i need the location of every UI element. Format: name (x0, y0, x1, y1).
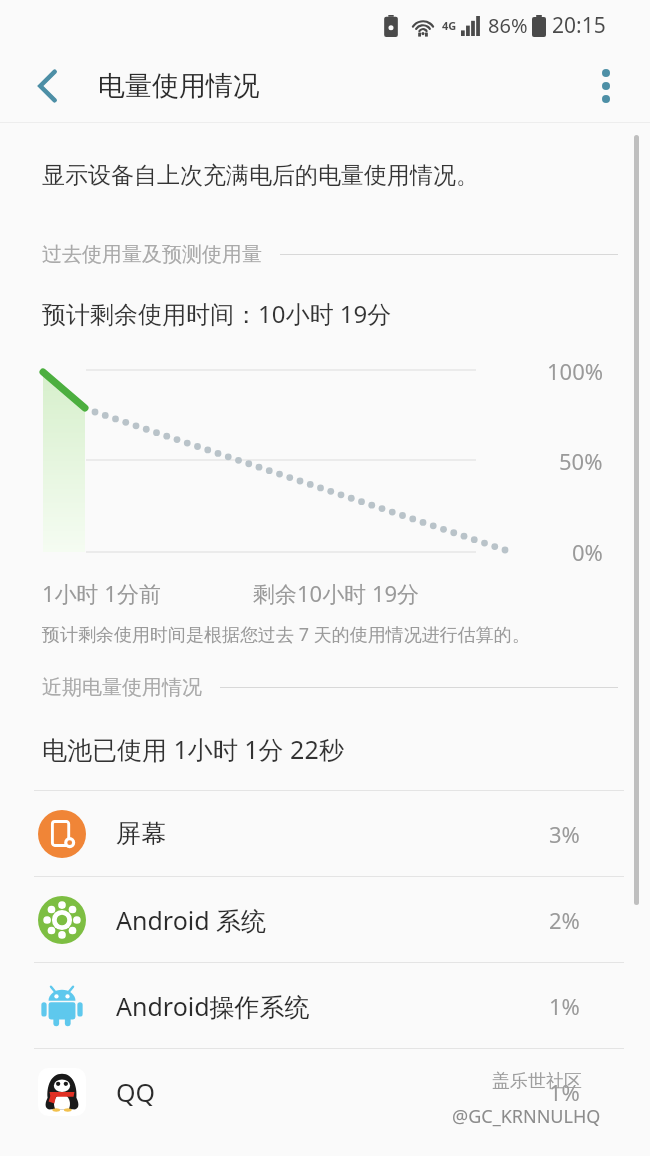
staticText: 50% (559, 446, 603, 476)
staticText: Android操作系统 (116, 989, 549, 1023)
staticText: 3% (549, 819, 580, 849)
staticText: Android 系统 (116, 903, 549, 937)
staticText: 预计剩余使用时间是根据您过去 7 天的使用情况进行估算的。 (42, 622, 530, 647)
staticText: 电量使用情况 (98, 69, 260, 103)
staticText: 近期电量使用情况 (42, 675, 202, 700)
staticText: 显示设备自上次充满电后的电量使用情况。 (42, 161, 479, 190)
staticText: 2% (549, 905, 580, 935)
staticText: 盖乐世社区 (492, 1070, 582, 1093)
staticText: 100% (547, 356, 604, 386)
staticText: 屏幕 (116, 818, 549, 849)
button[interactable]: QQ (0, 1049, 650, 1134)
staticText: 1% (549, 1077, 580, 1107)
staticText: 预计剩余使用时间：10小时 19分 (42, 297, 392, 330)
staticText: 1% (549, 991, 580, 1021)
button[interactable]: Android操作系统 (0, 963, 650, 1048)
staticText: 0% (572, 537, 603, 567)
staticText: 1小时 1分前 (42, 578, 161, 608)
staticText: 剩余10小时 19分 (253, 578, 420, 608)
button[interactable]: 屏幕 (0, 791, 650, 876)
staticText: 86% (488, 12, 528, 39)
staticText: 过去使用量及预测使用量 (42, 242, 262, 267)
staticText: 电池已使用 1小时 1分 22秒 (42, 732, 344, 766)
staticText: 4G (442, 18, 457, 33)
button[interactable]: Android 系统 (0, 877, 650, 962)
button[interactable]: More options (580, 60, 632, 112)
staticText: @GC_KRNNULHQ (452, 1104, 601, 1129)
staticText: 20:15 (552, 11, 606, 40)
button[interactable]: Back (20, 58, 76, 114)
staticText: QQ (116, 1075, 549, 1109)
